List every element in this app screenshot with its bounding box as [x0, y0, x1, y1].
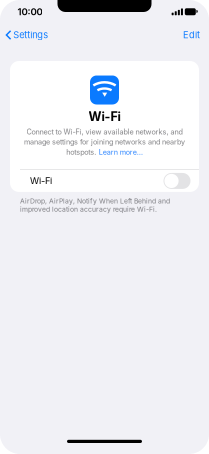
staticText: Edit — [183, 29, 200, 40]
button[interactable]: Edit — [174, 26, 209, 43]
button[interactable]: Learn more… — [99, 148, 143, 157]
staticText: 10:00 — [17, 6, 42, 17]
staticText: Connect to Wi-Fi, view available network… — [26, 127, 182, 136]
staticText: improved location accuracy require Wi-Fi… — [20, 205, 157, 213]
staticText: Learn more… — [99, 148, 143, 157]
staticText: Settings — [13, 29, 48, 40]
staticText: manage settings for joining networks and… — [24, 138, 185, 146]
button[interactable]: Wi-Fi — [10, 170, 199, 192]
button[interactable]: Settings — [0, 26, 54, 43]
staticText: AirDrop, AirPlay, Notify When Left Behin… — [20, 197, 170, 205]
staticText: Wi-Fi — [88, 109, 120, 124]
staticText: Wi-Fi — [30, 175, 52, 186]
staticText: hotspots. — [66, 148, 96, 157]
